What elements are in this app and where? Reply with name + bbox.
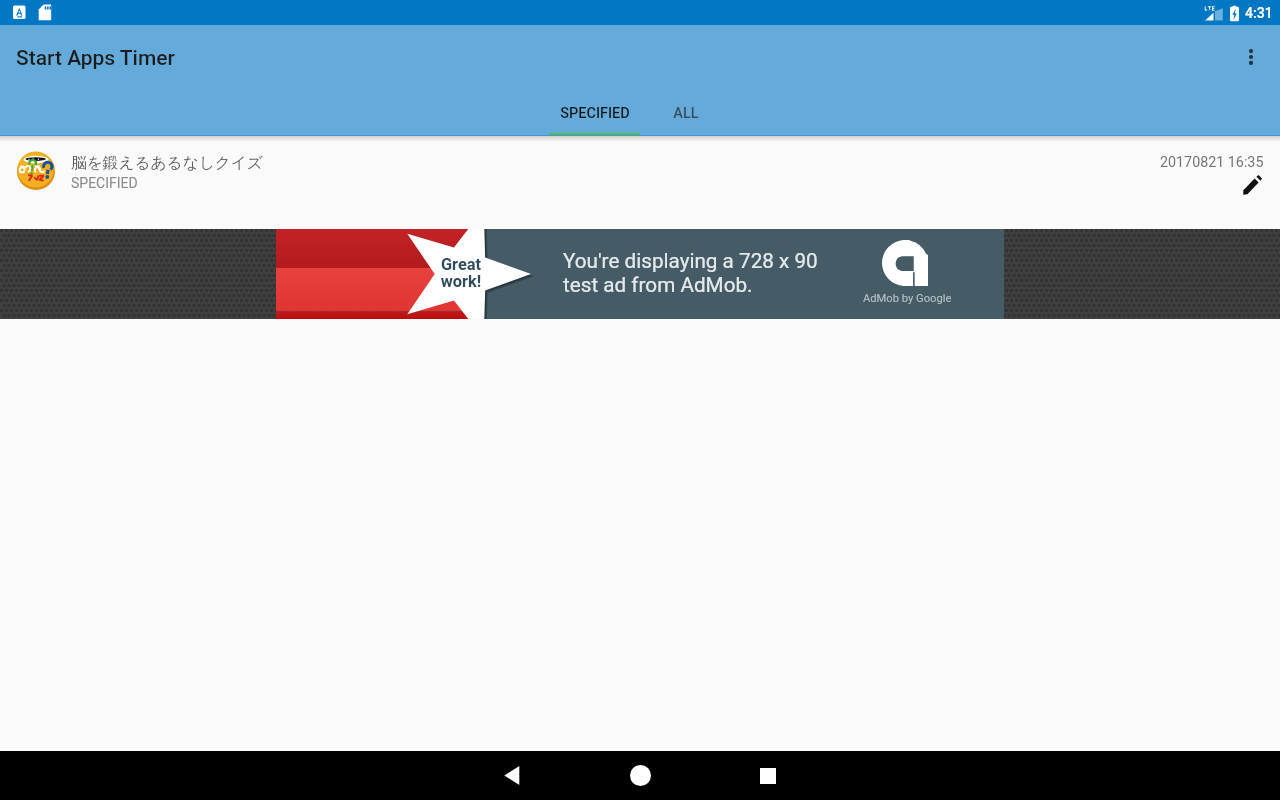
button[interactable]: More options: [1227, 33, 1275, 81]
staticText: 脳を鍛えるあるなしクイズ: [71, 153, 263, 173]
button[interactable]: ALL: [640, 89, 731, 136]
staticText: SPECIFIED: [560, 105, 630, 122]
button[interactable]: [0, 136, 1280, 229]
staticText: 20170821 16:35: [1160, 154, 1264, 171]
button[interactable]: SPECIFIED: [549, 89, 640, 136]
button[interactable]: Recents: [704, 751, 832, 800]
staticText: You're displaying a 728 x 90 test ad fro…: [563, 249, 818, 297]
staticText: Great work!: [425, 255, 497, 291]
staticText: AdMob by Google: [863, 292, 952, 305]
staticText: 4:31: [1245, 5, 1273, 21]
staticText: Start Apps Timer: [16, 46, 175, 71]
button[interactable]: Home: [576, 751, 704, 800]
staticText: SPECIFIED: [71, 175, 138, 191]
staticText: ALL: [673, 105, 699, 122]
button[interactable]: Back: [448, 751, 576, 800]
button[interactable]: Edit: [1233, 166, 1271, 204]
